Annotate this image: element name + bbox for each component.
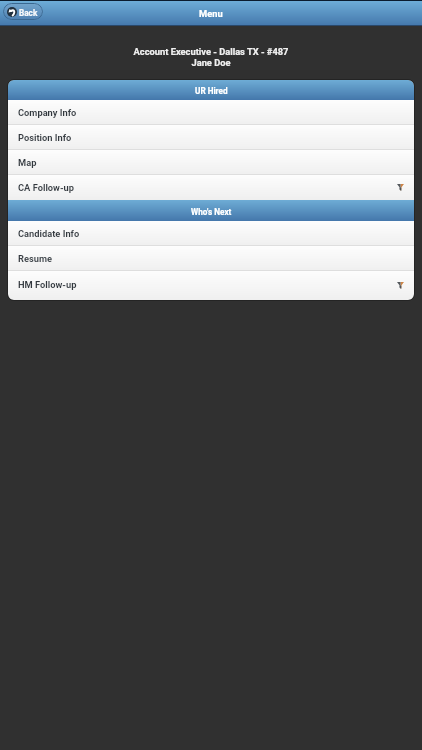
staticText: Resume [18,253,53,264]
button[interactable]: Resume [8,246,414,271]
button[interactable]: Position Info [8,125,414,150]
staticText: Position Info [18,132,72,143]
other: Filter [397,282,404,289]
staticText: Back [19,8,38,18]
button[interactable]: Candidate Info [8,221,414,246]
staticText: Jane Doe [0,57,422,68]
staticText: HM Follow-up [18,279,77,290]
staticText: Account Executive - Dallas TX - #487 [0,46,422,57]
other: Filter [397,184,404,191]
staticText: CA Follow-up [18,182,74,193]
staticText: Map [18,157,37,168]
staticText: Menu [199,8,223,19]
button[interactable]: HM Follow-up [8,271,414,300]
staticText: UR Hired [195,86,228,96]
staticText: Who's Next [191,207,232,217]
button[interactable]: Company Info [8,100,414,125]
button[interactable]: Back [3,3,43,20]
button[interactable]: Map [8,150,414,175]
button[interactable]: CA Follow-up [8,175,414,200]
staticText: Candidate Info [18,228,80,239]
staticText: Company Info [18,107,77,118]
